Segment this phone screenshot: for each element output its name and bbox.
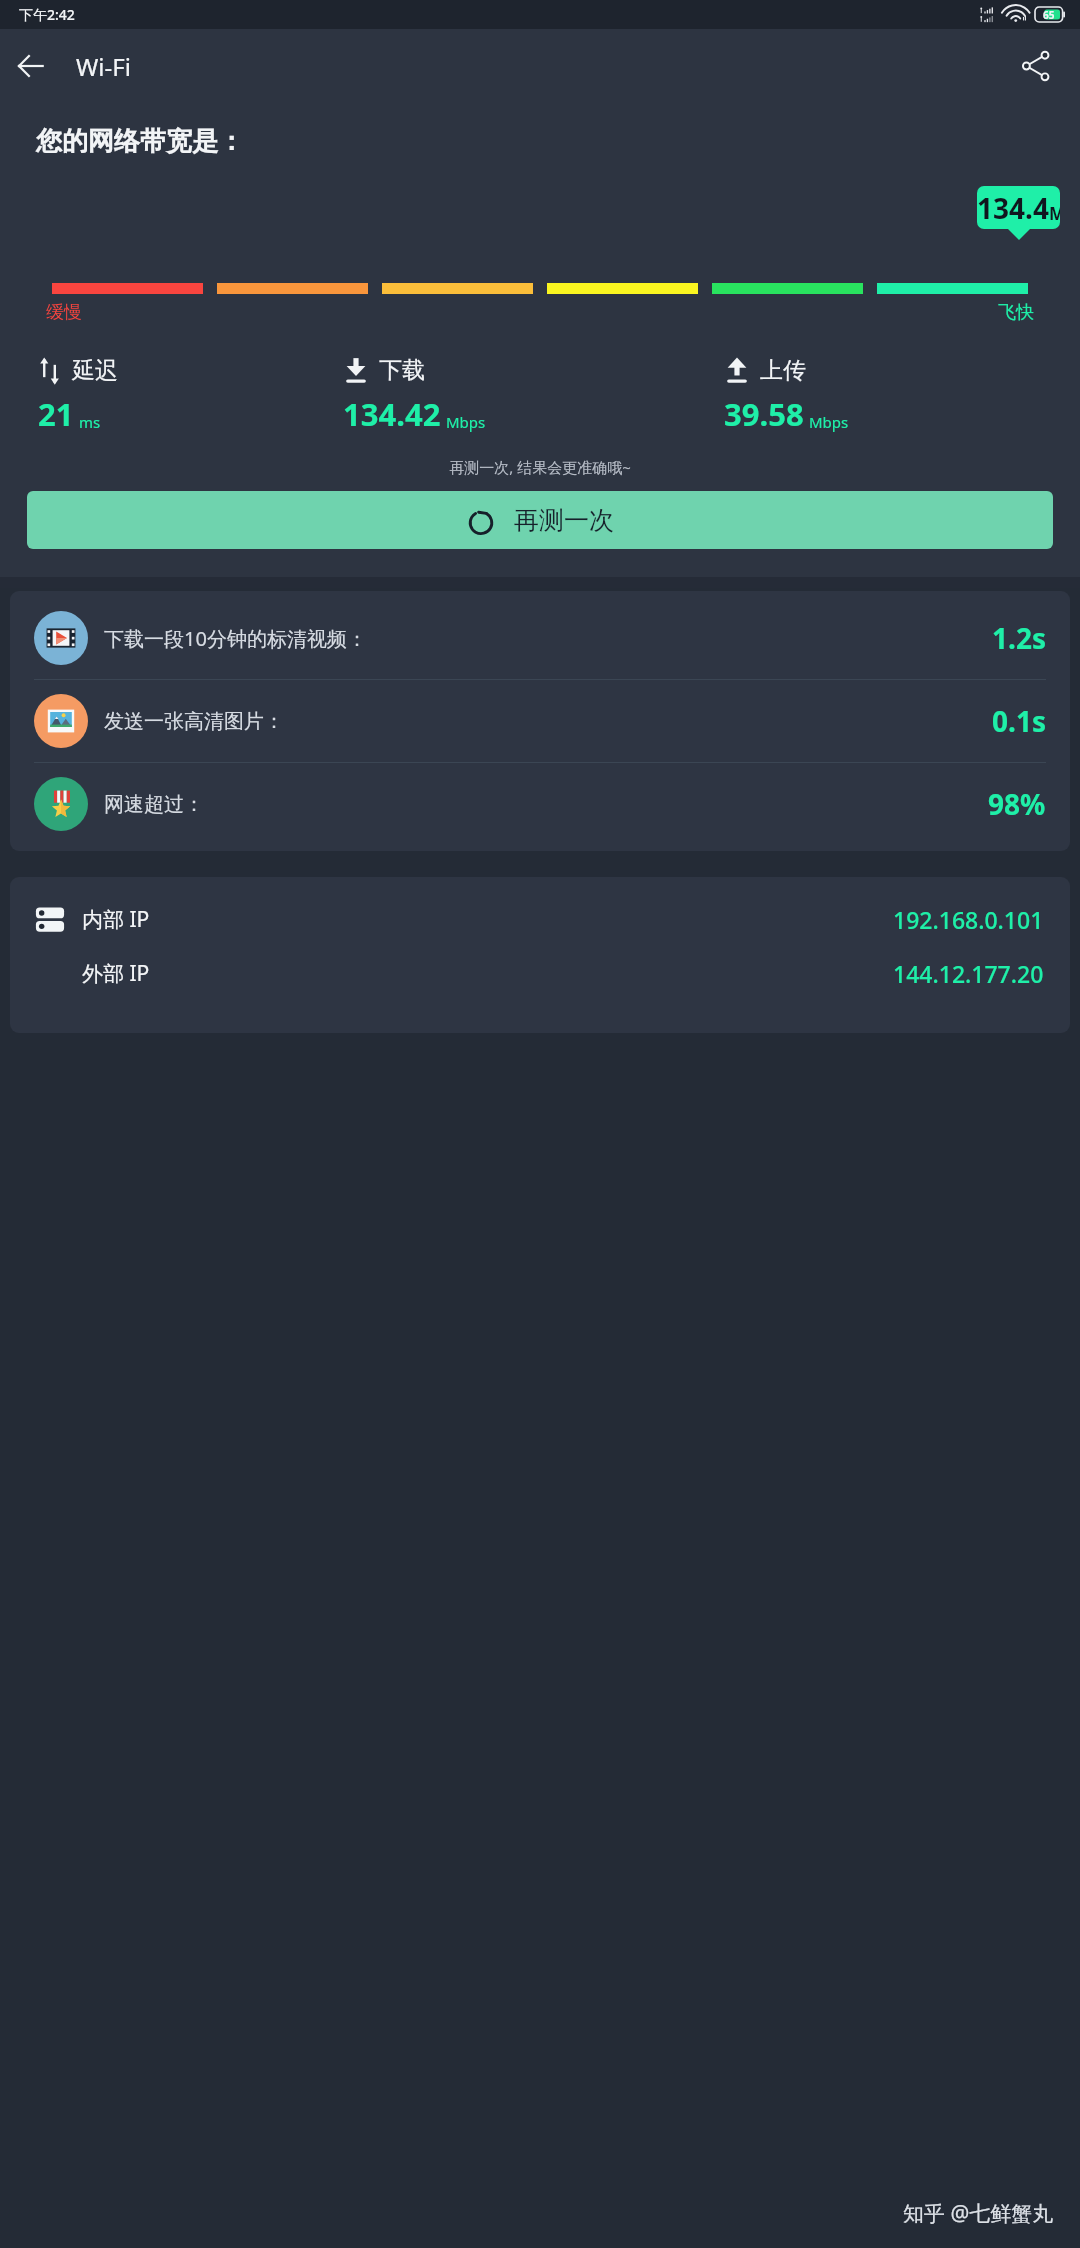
button[interactable]: 发送一张高清图片： <box>10 680 1070 762</box>
staticText: 下载一段10分钟的标清视频： <box>104 625 992 652</box>
button[interactable]: 外部 IP <box>10 949 1070 997</box>
staticText: ms <box>79 412 101 432</box>
staticText: 下载 <box>379 356 425 385</box>
staticText: 再测一次 <box>514 505 614 536</box>
staticText: 外部 IP <box>82 959 150 988</box>
staticText: 您的网络带宽是： <box>36 125 244 158</box>
staticText: 21 <box>38 393 74 435</box>
staticText: M <box>1049 202 1060 225</box>
staticText: 0.1s <box>992 702 1046 740</box>
staticText: 134.42 <box>343 393 441 435</box>
staticText: Wi-Fi <box>76 50 131 83</box>
button[interactable]: 内部 IP <box>10 895 1070 943</box>
staticText: 缓慢 <box>46 301 82 324</box>
button[interactable]: Back <box>0 35 62 97</box>
staticText: 上传 <box>760 356 806 385</box>
staticText: 延迟 <box>72 356 118 385</box>
staticText: 再测一次, 结果会更准确哦~ <box>0 457 1080 477</box>
staticText: 39.58 <box>724 393 804 435</box>
staticText: 网速超过： <box>104 792 988 817</box>
button[interactable]: 网速超过： <box>10 763 1070 845</box>
staticText: 下午2:42 <box>19 5 75 24</box>
staticText: 98% <box>988 785 1046 823</box>
staticText: Mbps <box>809 412 849 432</box>
staticText: 发送一张高清图片： <box>104 709 992 734</box>
staticText: 内部 IP <box>82 905 150 934</box>
staticText: Mbps <box>446 412 486 432</box>
button[interactable]: Share <box>1008 38 1064 94</box>
staticText: 1.2s <box>992 619 1046 657</box>
staticText: 知乎 @七鲜蟹丸 <box>903 2199 1054 2228</box>
staticText: 65 <box>1043 8 1055 22</box>
staticText: 192.168.0.101 <box>893 904 1044 935</box>
button[interactable]: 下载一段10分钟的标清视频： <box>10 597 1070 679</box>
staticText: 144.12.177.20 <box>893 958 1044 989</box>
staticText: 134.4 <box>977 189 1049 227</box>
staticText: 飞快 <box>998 301 1034 324</box>
button[interactable]: 再测一次 <box>27 491 1053 549</box>
